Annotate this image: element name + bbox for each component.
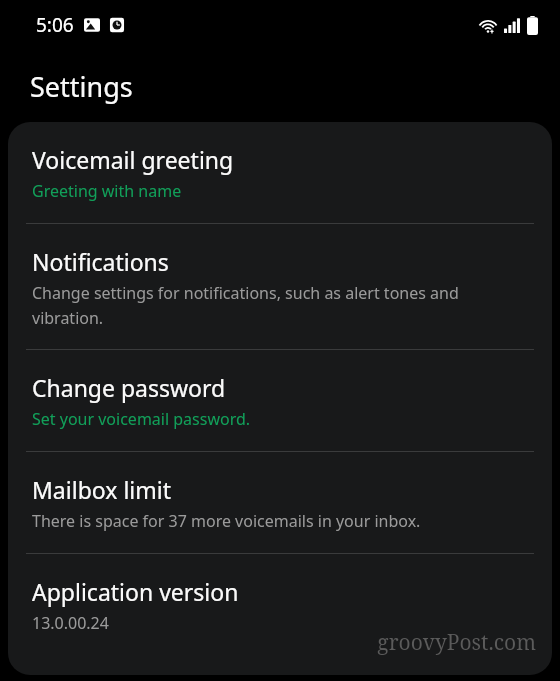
- staticText: Change settings for notifications, such …: [32, 282, 528, 328]
- staticText: Application version: [32, 576, 239, 607]
- button[interactable]: Notifications: [8, 224, 552, 349]
- staticText: Mailbox limit: [32, 474, 171, 505]
- staticText: groovyPost.com: [377, 628, 536, 657]
- staticText: 5:06: [36, 12, 74, 38]
- staticText: Settings: [30, 68, 133, 105]
- staticText: Greeting with name: [32, 180, 182, 202]
- button[interactable]: Voicemail greeting: [8, 122, 552, 223]
- staticText: Set your voicemail password.: [32, 408, 251, 430]
- staticText: 13.0.00.24: [32, 612, 109, 634]
- staticText: There is space for 37 more voicemails in…: [32, 510, 421, 532]
- button[interactable]: Mailbox limit: [8, 452, 552, 553]
- staticText: Voicemail greeting: [32, 144, 234, 175]
- button[interactable]: Application version: [8, 554, 552, 655]
- staticText: Change password: [32, 372, 226, 403]
- button[interactable]: Change password: [8, 350, 552, 451]
- staticText: Notifications: [32, 246, 169, 277]
